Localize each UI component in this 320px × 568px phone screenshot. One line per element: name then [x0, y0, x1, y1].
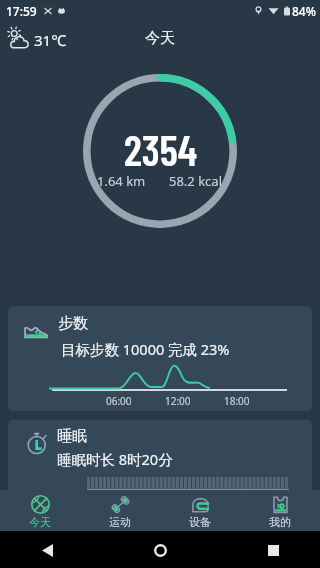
button[interactable]: 今天 [0, 490, 80, 531]
button[interactable]: Back [30, 533, 64, 567]
staticText: 31℃ [34, 30, 67, 50]
button[interactable]: 我的 [240, 490, 320, 531]
staticText: 目标步数 10000 完成 23% [61, 339, 230, 359]
staticText: 步数 [58, 314, 88, 333]
staticText: 17:59 [6, 3, 37, 19]
staticText: 2354 [124, 124, 197, 174]
staticText: 今天 [29, 515, 51, 529]
button[interactable]: 设备 [160, 490, 240, 531]
button[interactable]: 31℃ [4, 25, 69, 54]
staticText: 84% [292, 3, 316, 19]
staticText: 今天 [145, 29, 175, 48]
button[interactable]: Home [143, 533, 177, 567]
staticText: 06:00 [106, 394, 132, 408]
staticText: 运动 [109, 515, 131, 529]
button[interactable]: 步数 [8, 306, 312, 411]
staticText: 睡眠 [57, 427, 87, 446]
staticText: 我的 [269, 515, 291, 529]
staticText: 1.64 km [97, 172, 146, 190]
button[interactable]: 运动 [80, 490, 160, 531]
staticText: 18:00 [224, 394, 250, 408]
staticText: 58.2 kcal [169, 172, 223, 190]
button[interactable]: Recents [256, 533, 290, 567]
staticText: 设备 [189, 515, 211, 529]
staticText: 12:00 [165, 394, 191, 408]
button[interactable]: 睡眠 [8, 420, 312, 512]
staticText: 睡眠时长 8时20分 [57, 449, 173, 469]
